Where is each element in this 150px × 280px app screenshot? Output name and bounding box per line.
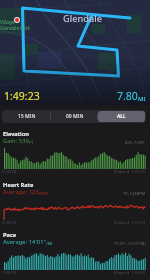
staticText: Average: 14'01": [3, 238, 46, 246]
staticText: /MI: [46, 241, 53, 246]
button[interactable]: 15 MIN: [3, 111, 51, 122]
button[interactable]: 60 MIN: [51, 111, 98, 122]
staticText: 0:00:00: [2, 270, 17, 276]
staticText: 7.80: [117, 89, 138, 103]
staticText: BPM: [39, 191, 48, 196]
button[interactable]: Route map: [0, 0, 150, 105]
staticText: 15'59"–13'03"/MI: [114, 241, 146, 246]
staticText: 15 MIN: [18, 113, 36, 120]
staticText: Elapsed 1:53:01: [114, 220, 146, 226]
staticText: 60 MIN: [66, 113, 84, 120]
staticText: Glendale: [63, 12, 102, 25]
staticText: 0:00:00: [2, 169, 17, 175]
staticText: 605–739FT: [125, 140, 146, 145]
staticText: ALL: [117, 113, 126, 120]
staticText: Heart Rate: [3, 181, 34, 189]
staticText: FT: [29, 140, 34, 145]
staticText: Village: [0, 19, 15, 25]
staticText: Average: 126: [3, 188, 39, 196]
staticText: 79–144BPM: [123, 191, 146, 196]
staticText: Elapsed 1:53:01: [114, 270, 146, 276]
button[interactable]: ALL: [98, 111, 145, 122]
staticText: MI: [138, 95, 146, 103]
staticText: Elevation: [3, 130, 29, 138]
staticText: Pace: [3, 231, 17, 239]
staticText: Elapsed 1:53:01: [114, 169, 146, 175]
staticText: Glendale Park: [0, 25, 31, 31]
staticText: Gain: 539: [3, 137, 29, 145]
staticText: 1:49:23: [4, 89, 40, 103]
staticText: 0:00:00: [2, 220, 17, 226]
